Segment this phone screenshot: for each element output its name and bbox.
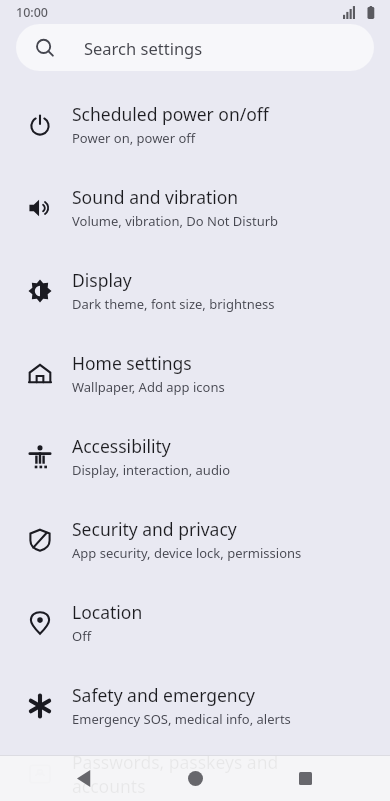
staticText: Emergency SOS, medical info, alerts (72, 710, 291, 728)
button[interactable]: Location (0, 581, 390, 664)
staticText: 10:00 (16, 4, 49, 21)
staticText: Search settings (84, 37, 203, 59)
button[interactable]: Search settings (16, 24, 374, 71)
button[interactable]: Scheduled power on/off (0, 83, 390, 166)
staticText: Home settings (72, 351, 192, 375)
staticText: Location (72, 600, 143, 624)
staticText: Safety and emergency (72, 683, 255, 707)
staticText: Dark theme, font size, brightness (72, 295, 275, 313)
button[interactable]: Sound and vibration (0, 166, 390, 249)
staticText: Off (72, 627, 92, 645)
staticText: Volume, vibration, Do Not Disturb (72, 212, 279, 230)
button[interactable]: Back (68, 761, 102, 795)
button[interactable]: Passwords, passkeys and accounts (0, 747, 390, 801)
staticText: Display (72, 268, 132, 292)
button[interactable]: Accessibility (0, 415, 390, 498)
staticText: Security and privacy (72, 517, 237, 541)
button[interactable]: Recents (288, 761, 322, 795)
staticText: Scheduled power on/off (72, 102, 269, 126)
button[interactable]: Home settings (0, 332, 390, 415)
button[interactable]: Security and privacy (0, 498, 390, 581)
staticText: Display, interaction, audio (72, 461, 231, 479)
button[interactable]: Home (178, 761, 212, 795)
staticText: Wallpaper, Add app icons (72, 378, 225, 396)
staticText: App security, device lock, permissions (72, 544, 302, 562)
staticText: Power on, power off (72, 129, 196, 147)
staticText: Accessibility (72, 434, 171, 458)
button[interactable]: Display (0, 249, 390, 332)
staticText: Sound and vibration (72, 185, 239, 209)
button[interactable]: Safety and emergency (0, 664, 390, 747)
staticText: Passwords, passkeys and accounts (72, 750, 330, 798)
